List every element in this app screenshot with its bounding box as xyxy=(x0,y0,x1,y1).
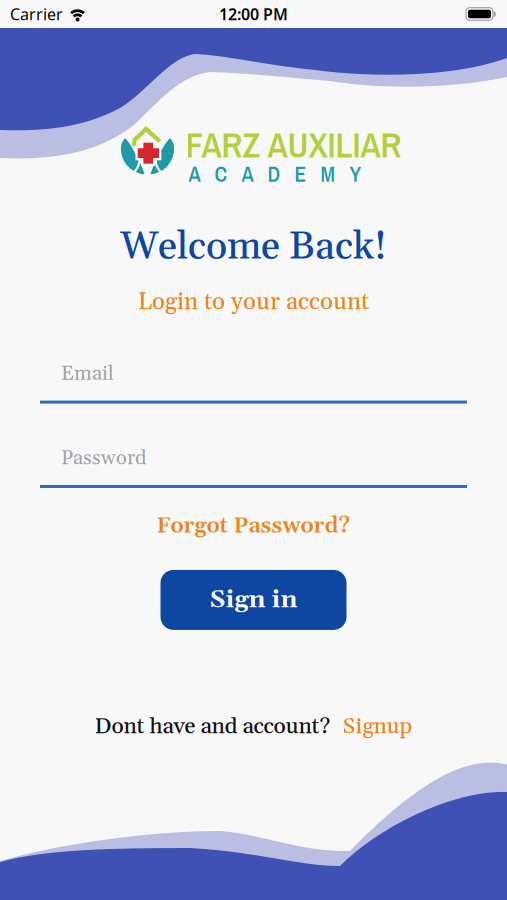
button[interactable]: Forgot Password? xyxy=(156,512,350,540)
staticText: Forgot Password? xyxy=(156,512,350,540)
staticText: 12:00 PM xyxy=(219,3,288,25)
button[interactable]: Signup xyxy=(342,713,412,741)
staticText: ACADEMY xyxy=(188,160,361,188)
button[interactable]: Password xyxy=(0,446,507,488)
staticText: FARZ AUXILIAR xyxy=(185,121,401,169)
button[interactable]: Email xyxy=(0,361,507,404)
staticText: Signup xyxy=(342,713,412,741)
staticText: Sign in xyxy=(209,584,297,615)
staticText: Login to your account xyxy=(138,288,369,317)
staticText: Welcome Back! xyxy=(120,223,387,271)
staticText: Password xyxy=(61,446,146,471)
staticText: Carrier xyxy=(10,3,63,25)
staticText: Email xyxy=(61,361,114,387)
button[interactable]: Sign in xyxy=(160,570,346,630)
staticText: Dont have and account? xyxy=(94,713,330,741)
